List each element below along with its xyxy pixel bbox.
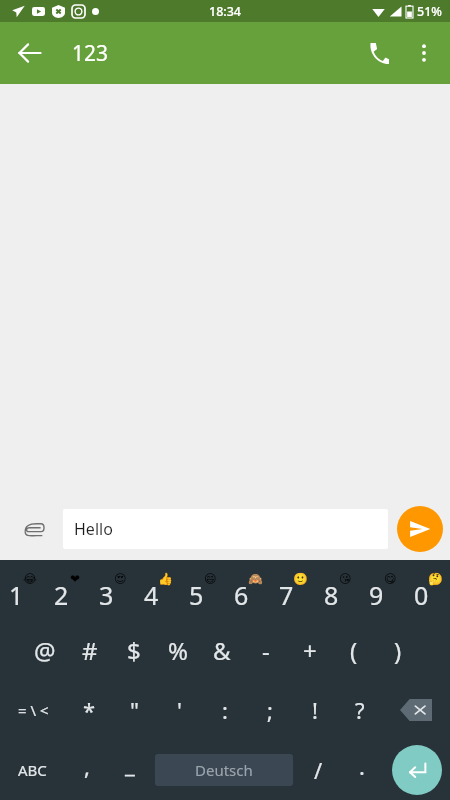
staticText: &: [213, 634, 231, 667]
staticText: /: [314, 755, 323, 785]
staticText: ABC: [18, 760, 47, 780]
button[interactable]: +: [288, 620, 332, 680]
button[interactable]: 4: [135, 560, 180, 620]
staticText: 7: [279, 578, 294, 612]
button[interactable]: Send: [397, 506, 443, 552]
button[interactable]: #: [67, 620, 112, 680]
staticText: $: [127, 634, 141, 667]
button[interactable]: 3: [90, 560, 135, 620]
button[interactable]: $: [112, 620, 156, 680]
button[interactable]: ": [112, 680, 157, 740]
button[interactable]: Hello: [63, 509, 388, 549]
staticText: 123: [72, 39, 109, 68]
staticText: 1: [9, 578, 24, 612]
staticText: ': [177, 695, 182, 725]
button[interactable]: = \ <: [0, 680, 67, 740]
button[interactable]: More options: [402, 31, 446, 75]
button[interactable]: 2: [45, 560, 90, 620]
button[interactable]: &: [200, 620, 244, 680]
button[interactable]: _: [108, 740, 152, 800]
staticText: ": [130, 695, 139, 725]
button[interactable]: .: [340, 740, 384, 800]
staticText: ,: [84, 751, 90, 781]
button[interactable]: -: [244, 620, 288, 680]
staticText: .: [359, 751, 365, 781]
staticText: 0: [414, 578, 429, 612]
button[interactable]: ,: [65, 740, 108, 800]
staticText: #: [82, 634, 98, 667]
staticText: ;: [267, 695, 273, 725]
button[interactable]: :: [202, 680, 247, 740]
staticText: %: [168, 634, 188, 667]
button[interactable]: 7: [270, 560, 315, 620]
button[interactable]: Attach: [10, 505, 58, 553]
staticText: ?: [355, 695, 365, 725]
button[interactable]: Enter: [392, 745, 442, 795]
button[interactable]: Back: [6, 29, 54, 77]
staticText: ): [394, 634, 402, 667]
button[interactable]: 1: [0, 560, 45, 620]
staticText: *: [83, 695, 96, 725]
staticText: ❤: [70, 572, 81, 586]
button[interactable]: ;: [247, 680, 292, 740]
staticText: 3: [99, 578, 114, 612]
staticText: -: [262, 634, 270, 667]
staticText: 😄: [204, 572, 217, 586]
button[interactable]: ): [376, 620, 420, 680]
staticText: 😘: [339, 572, 352, 586]
button[interactable]: Call: [354, 29, 402, 77]
button[interactable]: 8: [315, 560, 360, 620]
button[interactable]: 6: [225, 560, 270, 620]
staticText: 🤔: [428, 572, 443, 586]
staticText: 6: [234, 578, 249, 612]
button[interactable]: Deutsch: [155, 754, 293, 786]
staticText: !: [312, 695, 318, 725]
staticText: Hello: [74, 518, 113, 540]
button[interactable]: 9: [360, 560, 405, 620]
staticText: 8: [324, 578, 339, 612]
button[interactable]: ': [157, 680, 202, 740]
staticText: 😂: [23, 572, 38, 586]
button[interactable]: (: [332, 620, 376, 680]
button[interactable]: !: [292, 680, 337, 740]
button[interactable]: 0: [405, 560, 450, 620]
button[interactable]: ?: [337, 680, 382, 740]
staticText: Deutsch: [195, 760, 253, 780]
staticText: = \ <: [18, 700, 49, 720]
button[interactable]: %: [156, 620, 200, 680]
button[interactable]: *: [67, 680, 112, 740]
staticText: _: [125, 749, 135, 779]
staticText: @: [34, 634, 56, 667]
button[interactable]: Backspace: [382, 680, 450, 740]
button[interactable]: /: [296, 740, 340, 800]
button[interactable]: @: [22, 620, 67, 680]
staticText: 9: [369, 578, 384, 612]
staticText: 4: [144, 578, 159, 612]
button[interactable]: ABC: [0, 740, 65, 800]
staticText: 18:34: [209, 3, 242, 20]
staticText: 😋: [384, 572, 397, 586]
staticText: +: [303, 634, 317, 667]
staticText: 2: [54, 578, 69, 612]
staticText: 🙈: [248, 572, 263, 586]
staticText: (: [350, 634, 358, 667]
staticText: 👍: [158, 572, 173, 586]
staticText: 😍: [114, 572, 127, 586]
staticText: 51%: [417, 3, 442, 20]
staticText: 🙂: [293, 572, 308, 586]
staticText: 5: [189, 578, 204, 612]
button[interactable]: 5: [180, 560, 225, 620]
staticText: :: [222, 695, 228, 725]
